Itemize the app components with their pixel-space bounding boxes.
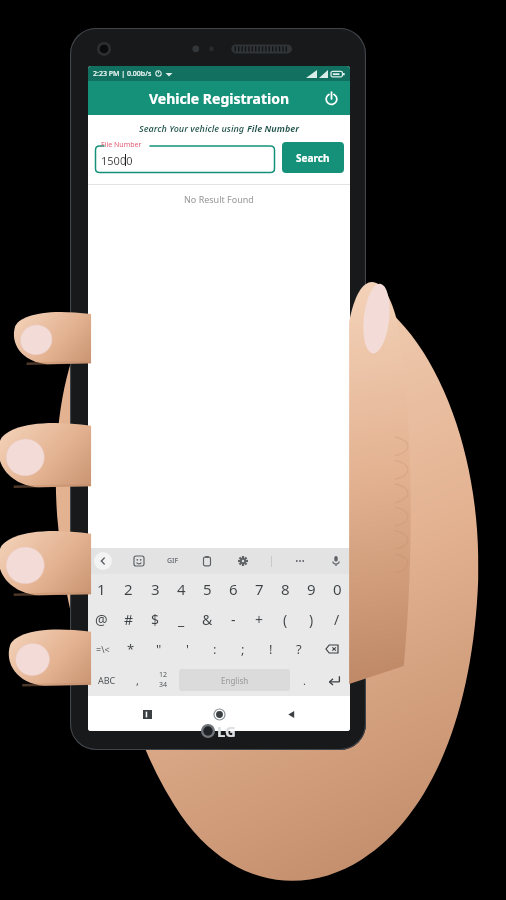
button[interactable]: Search bbox=[282, 142, 344, 173]
button[interactable]: ABC bbox=[88, 664, 125, 696]
button[interactable]: 8 bbox=[272, 574, 298, 604]
staticText: 7 bbox=[255, 579, 264, 599]
button[interactable]: , bbox=[125, 664, 150, 696]
button[interactable]: * bbox=[117, 634, 145, 664]
button[interactable]: 12 bbox=[150, 664, 177, 696]
staticText: 12 bbox=[159, 670, 168, 680]
button[interactable]: =\< bbox=[88, 634, 117, 664]
staticText: 8 bbox=[281, 579, 290, 599]
staticText: 3 bbox=[151, 579, 160, 599]
staticText: _ bbox=[178, 610, 185, 629]
button[interactable]: Back bbox=[94, 552, 112, 570]
button[interactable]: & bbox=[194, 604, 220, 634]
staticText: ( bbox=[283, 610, 288, 629]
staticText: Search bbox=[296, 151, 330, 165]
staticText: * bbox=[127, 640, 135, 658]
staticText: 6 bbox=[229, 579, 238, 599]
staticText: LG bbox=[217, 721, 236, 741]
staticText: ) bbox=[309, 610, 314, 629]
button[interactable]: GIF bbox=[167, 556, 179, 566]
button[interactable]: ) bbox=[298, 604, 324, 634]
button[interactable]: Recents bbox=[134, 701, 160, 727]
button[interactable]: Clipboard bbox=[199, 553, 215, 569]
button[interactable]: ' bbox=[173, 634, 201, 664]
staticText: : bbox=[213, 640, 217, 658]
staticText: No Result Found bbox=[184, 193, 254, 205]
button[interactable]: / bbox=[324, 604, 350, 634]
button[interactable]: Back bbox=[278, 701, 304, 727]
staticText: / bbox=[334, 610, 340, 629]
button[interactable]: Voice input bbox=[328, 553, 344, 569]
staticText: ; bbox=[241, 640, 245, 658]
staticText: 0 bbox=[333, 579, 342, 599]
staticText: 9 bbox=[307, 579, 316, 599]
staticText: English bbox=[221, 675, 249, 686]
button[interactable]: Logout bbox=[319, 86, 343, 110]
button[interactable]: . bbox=[292, 664, 317, 696]
staticText: ! bbox=[269, 640, 273, 658]
button[interactable]: Backspace bbox=[313, 634, 350, 664]
staticText: 2:23 PM | 0.00b/s bbox=[93, 69, 152, 79]
button[interactable]: 2 bbox=[115, 574, 142, 604]
staticText: Vehicle Registration bbox=[149, 89, 290, 108]
button[interactable]: : bbox=[201, 634, 229, 664]
button[interactable]: 1 bbox=[88, 574, 115, 604]
button[interactable]: Settings bbox=[235, 553, 251, 569]
button[interactable]: + bbox=[246, 604, 272, 634]
button[interactable]: ? bbox=[285, 634, 313, 664]
button[interactable]: # bbox=[115, 604, 142, 634]
button[interactable]: Sticker bbox=[131, 553, 147, 569]
button[interactable]: 7 bbox=[246, 574, 272, 604]
staticText: ? bbox=[296, 640, 302, 658]
staticText: - bbox=[231, 610, 236, 629]
button[interactable]: 0 bbox=[324, 574, 350, 604]
staticText: File Number bbox=[247, 122, 300, 134]
button[interactable]: ! bbox=[257, 634, 285, 664]
button[interactable]: ( bbox=[272, 604, 298, 634]
staticText: " bbox=[156, 640, 162, 658]
staticText: 34 bbox=[159, 680, 168, 690]
button[interactable]: More bbox=[292, 553, 308, 569]
button[interactable]: 6 bbox=[220, 574, 246, 604]
button[interactable]: - bbox=[220, 604, 246, 634]
staticText: 15000 bbox=[101, 153, 133, 168]
staticText: Search Your vehicle using bbox=[139, 122, 247, 134]
button[interactable]: 3 bbox=[142, 574, 168, 604]
button[interactable]: 9 bbox=[298, 574, 324, 604]
staticText: GIF bbox=[167, 556, 179, 566]
staticText: 5 bbox=[203, 579, 212, 599]
button[interactable]: English bbox=[179, 669, 290, 691]
button[interactable]: ; bbox=[229, 634, 257, 664]
button[interactable]: " bbox=[145, 634, 173, 664]
button[interactable]: $ bbox=[142, 604, 168, 634]
staticText: ABC bbox=[98, 674, 116, 686]
button[interactable]: Enter bbox=[317, 664, 350, 696]
staticText: ' bbox=[186, 640, 189, 658]
staticText: File Number bbox=[101, 140, 142, 150]
staticText: 4 bbox=[177, 579, 186, 599]
staticText: 2 bbox=[124, 579, 133, 599]
button[interactable]: 4 bbox=[168, 574, 194, 604]
button[interactable]: Home bbox=[206, 701, 232, 727]
staticText: @ bbox=[95, 610, 108, 629]
button[interactable]: _ bbox=[168, 604, 194, 634]
staticText: & bbox=[202, 610, 213, 629]
button[interactable]: 5 bbox=[194, 574, 220, 604]
staticText: . bbox=[303, 673, 306, 688]
staticText: + bbox=[255, 610, 264, 629]
button[interactable]: File Number bbox=[94, 140, 276, 174]
button[interactable]: @ bbox=[88, 604, 115, 634]
staticText: 1 bbox=[97, 579, 106, 599]
staticText: # bbox=[124, 610, 134, 629]
staticText: $ bbox=[151, 610, 160, 629]
staticText: =\< bbox=[96, 643, 110, 655]
staticText: , bbox=[136, 673, 139, 688]
